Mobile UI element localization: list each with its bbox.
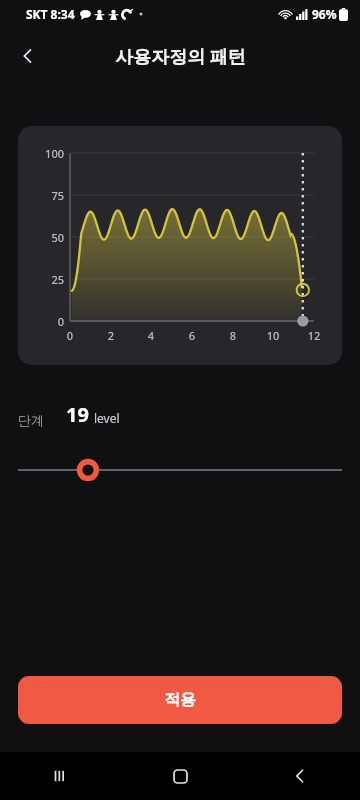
staticText: 96% [312, 6, 337, 22]
staticText: 100 [30, 146, 64, 161]
staticText: level [94, 410, 120, 426]
staticText: 사용자정의 패턴 [115, 44, 246, 69]
button[interactable]: Recents [0, 752, 120, 800]
button[interactable]: Home [120, 752, 240, 800]
staticText: 단계 [18, 412, 44, 428]
staticText: 2 [97, 328, 125, 343]
staticText: 19 [66, 401, 89, 428]
staticText: 6 [178, 328, 206, 343]
button[interactable]: Back [240, 752, 360, 800]
staticText: 8 [219, 328, 247, 343]
staticText: 0 [30, 314, 64, 329]
staticText: 50 [30, 230, 64, 245]
staticText: 적용 [164, 690, 196, 710]
staticText: 0 [56, 328, 84, 343]
staticText: SKT 8:34 [26, 6, 75, 22]
button[interactable]: 적용 [18, 676, 342, 724]
staticText: 75 [30, 188, 64, 203]
staticText: 4 [137, 328, 165, 343]
button[interactable]: Back [6, 34, 50, 78]
staticText: 25 [30, 272, 64, 287]
staticText: 10 [259, 328, 287, 343]
button[interactable]: Level slider [0, 454, 360, 486]
staticText: 12 [300, 328, 328, 343]
